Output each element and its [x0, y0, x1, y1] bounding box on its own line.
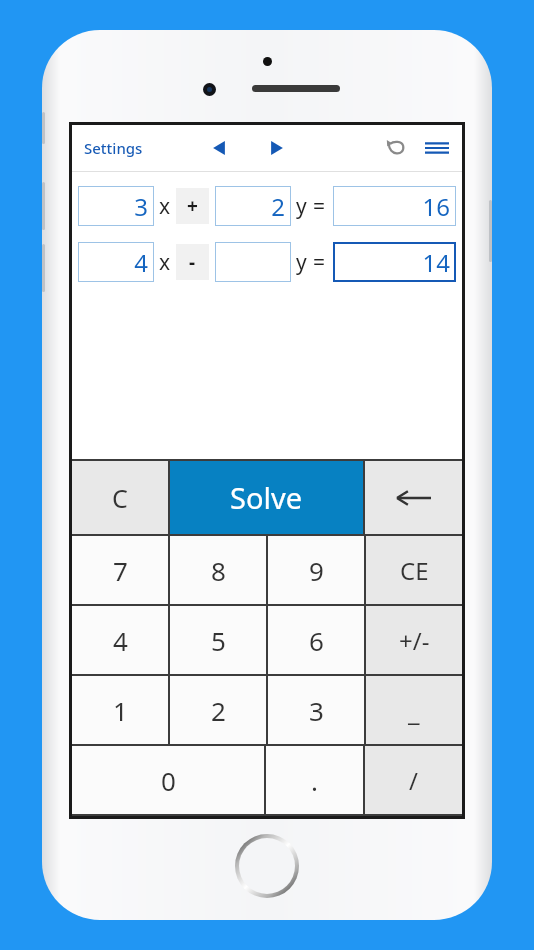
staticText: y — [296, 192, 307, 221]
staticText: 3 — [309, 693, 324, 728]
button[interactable]: Menu — [418, 129, 456, 167]
button[interactable]: 1 — [72, 676, 168, 744]
staticText: 4 — [134, 246, 148, 279]
button[interactable]: Next — [260, 131, 294, 165]
button[interactable]: . — [266, 746, 363, 814]
staticText: 4 — [113, 623, 128, 658]
staticText: 14 — [422, 246, 450, 279]
button[interactable]: 2 — [215, 186, 291, 226]
staticText: 2 — [211, 693, 226, 728]
staticText: 2 — [271, 190, 285, 223]
staticText: 6 — [309, 623, 324, 658]
button[interactable]: 6 — [268, 606, 364, 674]
staticText: 5 — [211, 623, 226, 658]
button[interactable]: Undo — [378, 130, 414, 166]
button[interactable]: +/- — [366, 606, 462, 674]
button[interactable]: 4 — [78, 242, 154, 282]
staticText: 0 — [161, 763, 176, 798]
staticText: - — [189, 249, 196, 275]
button[interactable]: CE — [366, 536, 462, 604]
staticText: 16 — [422, 190, 450, 223]
button[interactable]: 0 — [72, 746, 264, 814]
button[interactable]: 3 — [268, 676, 364, 744]
button[interactable]: 8 — [170, 536, 266, 604]
staticText: _ — [408, 693, 420, 728]
staticText: / — [409, 764, 418, 797]
button[interactable]: 7 — [72, 536, 168, 604]
staticText: + — [187, 193, 198, 219]
button[interactable]: 3 — [78, 186, 154, 226]
staticText: y — [296, 248, 307, 277]
staticText: . — [311, 763, 318, 798]
button[interactable]: Settings — [80, 132, 147, 164]
button[interactable]: 4 — [72, 606, 168, 674]
button[interactable]: 5 — [170, 606, 266, 674]
button[interactable]: 2 — [170, 676, 266, 744]
staticText: 8 — [211, 553, 226, 588]
button[interactable]: Backspace — [365, 461, 462, 534]
button[interactable]: 14 — [333, 242, 456, 282]
button[interactable]: 9 — [268, 536, 364, 604]
staticText: 1 — [113, 693, 128, 728]
staticText: +/- — [399, 624, 430, 657]
staticText: CE — [400, 554, 429, 587]
staticText: x — [159, 248, 171, 277]
button[interactable]: Solve — [170, 461, 363, 534]
staticText: 9 — [309, 553, 324, 588]
staticText: 3 — [134, 190, 148, 223]
button[interactable]: Previous — [202, 131, 236, 165]
button[interactable]: C — [72, 461, 168, 534]
staticText: Settings — [84, 138, 143, 158]
staticText: = — [313, 248, 326, 277]
staticText: x — [159, 192, 171, 221]
button[interactable]: _ — [366, 676, 462, 744]
staticText: Solve — [230, 478, 303, 517]
button[interactable]: / — [365, 746, 462, 814]
button[interactable] — [215, 242, 291, 282]
button[interactable]: 16 — [333, 186, 456, 226]
staticText: = — [313, 192, 326, 221]
staticText: 7 — [113, 553, 128, 588]
staticText: C — [112, 481, 128, 515]
